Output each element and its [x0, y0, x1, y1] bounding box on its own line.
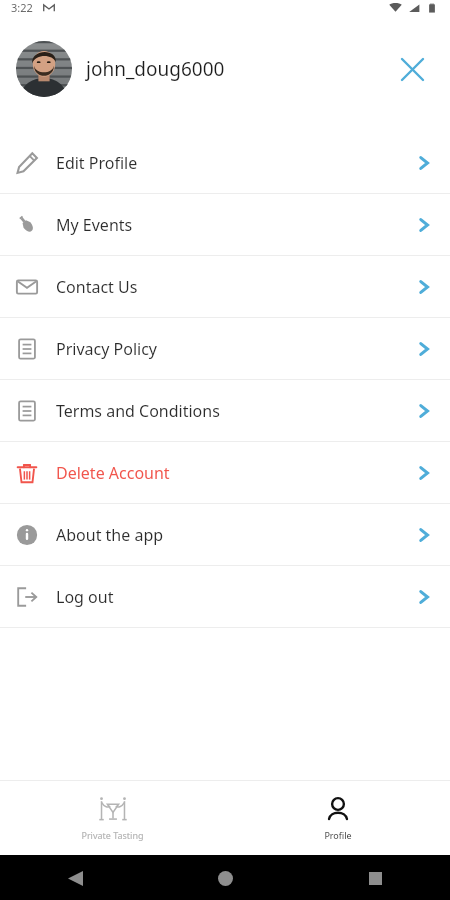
staticText: 3:22 [11, 0, 33, 15]
button[interactable]: Privacy Policy [0, 318, 450, 379]
staticText: My Events [56, 214, 133, 236]
button[interactable]: Edit Profile [0, 132, 450, 193]
staticText: Profile [324, 829, 352, 841]
button[interactable]: Delete Account [0, 442, 450, 503]
staticText: Private Tasting [81, 829, 144, 841]
button[interactable] [16, 41, 72, 97]
staticText: Log out [56, 586, 114, 608]
staticText: Delete Account [56, 462, 170, 484]
staticText: Contact Us [56, 276, 138, 298]
staticText: Terms and Conditions [56, 400, 220, 422]
button[interactable]: My Events [0, 194, 450, 255]
button[interactable]: Close [390, 47, 434, 91]
button[interactable]: Profile [225, 787, 450, 849]
button[interactable]: Home [205, 858, 245, 898]
button[interactable]: Contact Us [0, 256, 450, 317]
button[interactable]: Recent apps [355, 858, 395, 898]
button[interactable]: Private Tasting [0, 787, 225, 849]
button[interactable]: Back [55, 858, 95, 898]
button[interactable]: Terms and Conditions [0, 380, 450, 441]
button[interactable]: Log out [0, 566, 450, 627]
staticText: Edit Profile [56, 152, 138, 174]
staticText: Privacy Policy [56, 338, 157, 360]
staticText: john_doug6000 [86, 56, 225, 82]
staticText: About the app [56, 524, 164, 546]
button[interactable]: About the app [0, 504, 450, 565]
